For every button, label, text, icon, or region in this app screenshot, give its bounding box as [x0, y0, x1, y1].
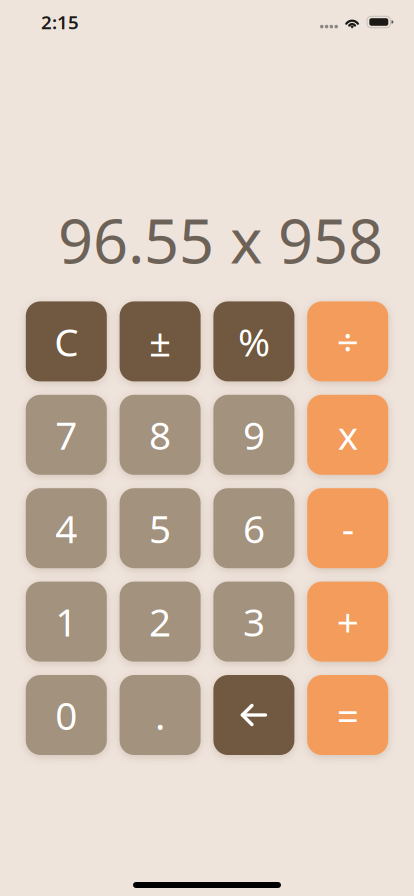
- button[interactable]: 6: [213, 488, 294, 568]
- staticText: 2: [149, 596, 171, 647]
- button[interactable]: Delete: [213, 675, 294, 755]
- staticText: .: [155, 689, 165, 741]
- button[interactable]: Minus: [307, 488, 388, 568]
- staticText: C: [54, 316, 78, 367]
- staticText: 9: [243, 409, 265, 460]
- button[interactable]: Equals: [307, 675, 388, 755]
- button[interactable]: Divide: [307, 301, 388, 381]
- staticText: 0: [55, 689, 77, 741]
- staticText: x: [338, 409, 358, 460]
- button[interactable]: 5: [120, 488, 201, 568]
- staticText: -: [342, 502, 354, 554]
- staticText: =: [337, 689, 359, 741]
- button[interactable]: Decimal point: [120, 675, 201, 755]
- button[interactable]: 0: [26, 675, 107, 755]
- staticText: ±: [149, 316, 171, 367]
- staticText: 96.55 x 958: [58, 199, 383, 280]
- button[interactable]: 2: [120, 582, 201, 662]
- staticText: 5: [149, 502, 171, 554]
- button[interactable]: 1: [26, 582, 107, 662]
- staticText: 3: [243, 596, 265, 647]
- button[interactable]: 7: [26, 395, 107, 475]
- button[interactable]: 3: [213, 582, 294, 662]
- button[interactable]: 8: [120, 395, 201, 475]
- staticText: 2:15: [41, 10, 79, 34]
- staticText: 8: [149, 409, 171, 460]
- button[interactable]: 4: [26, 488, 107, 568]
- button[interactable]: Plus minus: [120, 301, 201, 381]
- staticText: %: [238, 316, 270, 367]
- button[interactable]: Multiply: [307, 395, 388, 475]
- staticText: ÷: [337, 316, 359, 367]
- staticText: +: [337, 596, 359, 647]
- staticText: 4: [55, 502, 77, 554]
- staticText: 7: [55, 409, 77, 460]
- button[interactable]: Plus: [307, 582, 388, 662]
- button[interactable]: Percent: [213, 301, 294, 381]
- button[interactable]: 9: [213, 395, 294, 475]
- button[interactable]: Clear: [26, 301, 107, 381]
- staticText: 6: [243, 502, 265, 554]
- staticText: 1: [55, 596, 77, 647]
